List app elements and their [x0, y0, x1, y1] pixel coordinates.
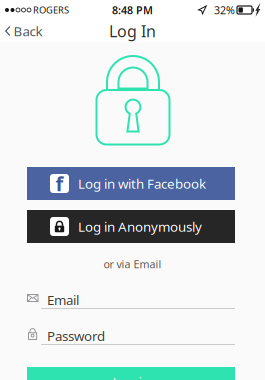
staticText: Log in [112, 373, 149, 380]
button[interactable]: Email [27, 288, 235, 318]
button[interactable]: Log in Anonymously [27, 210, 235, 243]
staticText: f [55, 170, 63, 197]
button[interactable]: Log in [27, 367, 235, 380]
staticText: Back [13, 22, 42, 40]
staticText: Log In [109, 20, 156, 42]
staticText: Log in with Facebook [78, 175, 206, 192]
staticText: Email [47, 291, 79, 309]
staticText: 8:48 PM [112, 3, 153, 17]
staticText: or via Email [103, 257, 161, 271]
button[interactable]: Password [27, 324, 235, 354]
button[interactable]: f [27, 167, 235, 200]
staticText: Log in Anonymously [78, 218, 202, 235]
staticText: Password [47, 327, 105, 345]
staticText: 32% [214, 3, 235, 17]
button[interactable]: Back [0, 20, 48, 42]
staticText: ROGERS [31, 4, 69, 16]
